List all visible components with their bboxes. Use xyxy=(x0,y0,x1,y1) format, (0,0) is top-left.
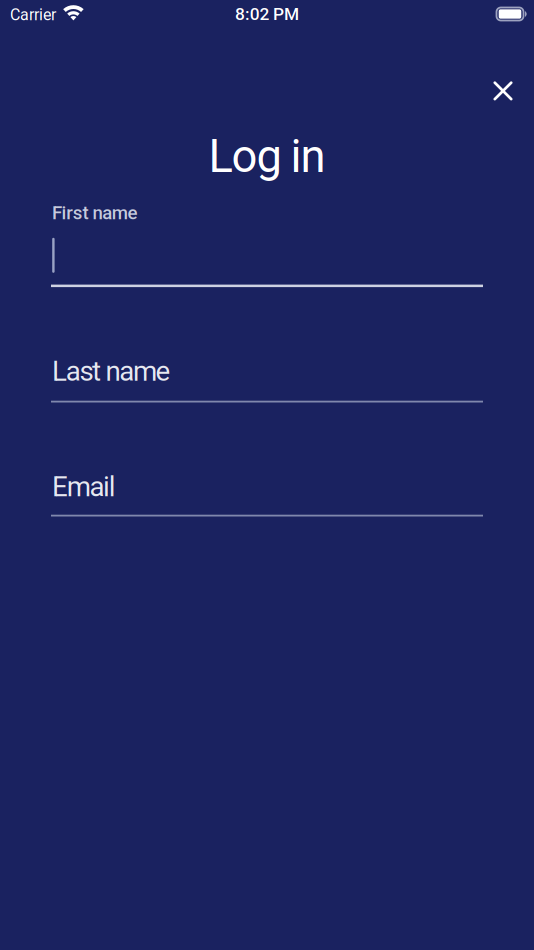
button[interactable]: Email xyxy=(51,474,483,522)
button[interactable]: First name xyxy=(51,203,483,299)
staticText: First name xyxy=(52,202,137,224)
button[interactable]: Close xyxy=(479,67,527,115)
staticText: 8:02 PM xyxy=(235,4,299,24)
staticText: Log in xyxy=(208,130,325,183)
staticText: Last name xyxy=(52,355,171,387)
staticText: Email xyxy=(52,470,116,503)
button[interactable]: Last name xyxy=(51,360,483,408)
staticText: Carrier xyxy=(10,5,56,24)
